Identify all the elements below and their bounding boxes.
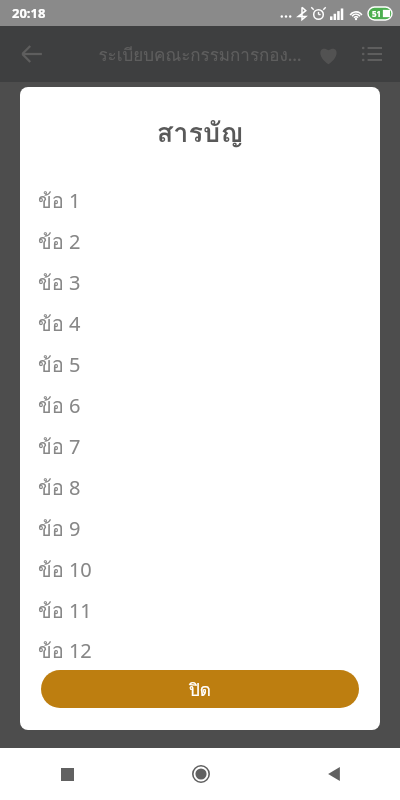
staticText: ปิด [189,676,211,703]
staticText: ข้อ 8 [38,472,81,504]
staticText: ข้อ 4 [38,308,81,340]
staticText: ระเบียบคณะกรรมการกอง… [98,41,302,68]
button[interactable]: ข้อ 11 [20,590,380,631]
button[interactable]: ข้อ 1 [20,180,380,221]
staticText: ข้อ 10 [38,554,92,586]
staticText: 20:18 [12,4,46,22]
button[interactable]: Back [267,748,400,800]
staticText: 51 [372,8,382,19]
staticText: ข้อ 11 [38,595,92,627]
staticText: ข้อ 12 [38,635,92,667]
button[interactable]: Recents [0,748,134,800]
button[interactable]: Favorite [306,32,350,76]
button[interactable]: ข้อ 2 [20,221,380,262]
staticText: สารบัญ [20,111,380,154]
button[interactable]: ข้อ 9 [20,508,380,549]
button[interactable]: Table of contents [350,32,394,76]
button[interactable]: ข้อ 10 [20,549,380,590]
button[interactable]: ข้อ 4 [20,303,380,344]
button[interactable]: ข้อ 6 [20,385,380,426]
staticText: ข้อ 3 [38,267,81,299]
button[interactable]: ข้อ 3 [20,262,380,303]
button[interactable]: ข้อ 5 [20,344,380,385]
button[interactable]: Back [8,30,56,78]
staticText: ข้อ 9 [38,513,81,545]
button[interactable]: ข้อ 7 [20,426,380,467]
staticText: ข้อ 5 [38,349,81,381]
button[interactable]: ข้อ 8 [20,467,380,508]
staticText: ข้อ 1 [38,185,81,217]
staticText: ข้อ 7 [38,431,81,463]
staticText: ข้อ 2 [38,226,81,258]
button[interactable]: ปิด [41,670,359,708]
button[interactable]: ข้อ 12 [20,631,380,670]
button[interactable]: Home [134,748,267,800]
staticText: ข้อ 6 [38,390,81,422]
